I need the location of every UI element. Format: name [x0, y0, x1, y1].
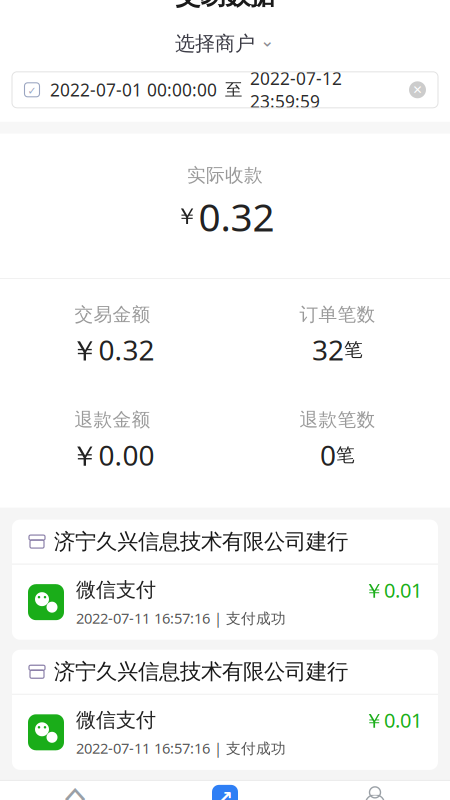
- staticText: 济宁久兴信息技术有限公司建行: [54, 528, 348, 555]
- staticText: 2022-07-01 00:00:00: [50, 78, 217, 101]
- staticText: 微信支付: [76, 708, 156, 732]
- staticText: ￥0.01: [364, 707, 422, 733]
- button[interactable]: ↗: [150, 779, 300, 800]
- staticText: 交易金额: [74, 303, 150, 326]
- staticText: 退款笔数: [299, 408, 375, 431]
- staticText: ￥0.01: [364, 577, 422, 603]
- staticText: 2022-07-11 16:57:16 | 支付成功: [76, 738, 286, 758]
- staticText: 订单笔数: [299, 303, 375, 326]
- staticText: 济宁久兴信息技术有限公司建行: [54, 659, 348, 685]
- staticText: ✕: [412, 83, 422, 97]
- staticText: 笔: [336, 443, 355, 466]
- staticText: 0.32: [198, 191, 274, 242]
- staticText: 笔: [344, 338, 363, 361]
- button[interactable]: 我的: [300, 780, 450, 800]
- staticText: 2022-07-11 16:57:16 | 支付成功: [76, 608, 286, 628]
- staticText: 0: [320, 436, 336, 473]
- staticText: 实际收款: [187, 164, 263, 187]
- staticText: 2022-07-12 23:59:59: [250, 67, 342, 113]
- staticText: ￥0.00: [70, 436, 154, 474]
- staticText: ⌂: [62, 775, 87, 800]
- staticText: ↗: [216, 786, 233, 800]
- staticText: ￥: [175, 202, 198, 230]
- staticText: 32: [312, 331, 344, 368]
- staticText: 选择商户: [175, 31, 255, 56]
- staticText: 微信支付: [76, 578, 156, 602]
- button[interactable]: ⌂: [0, 780, 150, 800]
- staticText: 交易数据: [175, 0, 275, 11]
- button[interactable]: ✓: [0, 72, 450, 108]
- staticText: 至: [225, 79, 242, 100]
- button[interactable]: 选择商户: [169, 27, 281, 60]
- staticText: ⌄: [260, 31, 275, 50]
- staticText: ✓: [27, 85, 36, 97]
- staticText: ￥0.32: [70, 331, 154, 368]
- staticText: 退款金额: [74, 408, 150, 431]
